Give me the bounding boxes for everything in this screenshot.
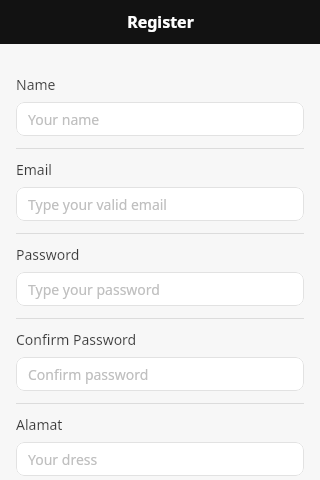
button[interactable]: Type your valid email xyxy=(16,187,304,221)
button[interactable]: Your name xyxy=(16,102,304,136)
button[interactable]: Type your password xyxy=(16,272,304,306)
staticText: Register xyxy=(127,11,194,33)
staticText: Password xyxy=(16,245,80,264)
staticText: Type your password xyxy=(28,280,160,299)
staticText: Confirm password xyxy=(28,365,149,384)
staticText: Email xyxy=(16,160,52,179)
staticText: Your dress xyxy=(28,450,98,469)
button[interactable]: Confirm password xyxy=(16,357,304,391)
staticText: Name xyxy=(16,75,56,94)
staticText: Alamat xyxy=(16,415,63,434)
staticText: Confirm Password xyxy=(16,330,137,349)
staticText: Your name xyxy=(28,110,100,129)
staticText: Type your valid email xyxy=(28,195,167,214)
button[interactable]: Your dress xyxy=(16,442,304,476)
other: Register title bar xyxy=(0,0,320,44)
